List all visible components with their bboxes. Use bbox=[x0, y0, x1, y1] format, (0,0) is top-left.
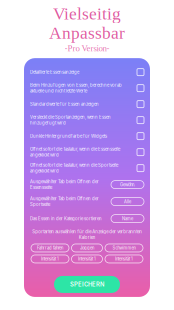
staticText: Sportarten auswählen für die Anzeige der… bbox=[32, 229, 142, 240]
button[interactable]: Fahrrad fahren bbox=[31, 244, 69, 252]
staticText: Gewöhn. bbox=[120, 182, 135, 187]
staticText: Ausgewählter Tab beim Öffnen der Sportse… bbox=[30, 196, 99, 207]
staticText: Alle bbox=[124, 199, 131, 204]
button[interactable]: Intensität 1 bbox=[31, 255, 69, 263]
staticText: Joggen bbox=[80, 245, 94, 250]
staticText: Fahrrad fahren bbox=[37, 245, 63, 250]
staticText: Standardwerte für Essen anzeigen bbox=[30, 102, 99, 107]
staticText: Öffnet sofort die Tastatur, wenn die Ess… bbox=[30, 147, 120, 157]
button[interactable]: Name bbox=[111, 215, 144, 223]
button[interactable]: Versteckt die Sportanzeigen, wenn Essen … bbox=[30, 112, 144, 128]
staticText: Versteckt die Sportanzeigen, wenn Essen … bbox=[30, 115, 111, 125]
staticText: Öffnet sofort die Tastatur, wenn die Spo… bbox=[30, 163, 118, 173]
staticText: Name bbox=[122, 216, 133, 221]
staticText: Vielseitig bbox=[53, 4, 121, 23]
button[interactable]: Schwimmen bbox=[105, 244, 143, 252]
button[interactable]: Intensität 1 bbox=[105, 255, 143, 263]
staticText: Anpassbar bbox=[49, 23, 125, 42]
button[interactable]: Joggen bbox=[71, 244, 102, 252]
staticText: SPEICHERN bbox=[70, 281, 104, 288]
staticText: Beim Hinzufügen von Essen, berechne vora… bbox=[30, 83, 122, 93]
staticText: Intensität 1 bbox=[115, 256, 133, 261]
staticText: Ausgewählter Tab beim Öffnen der Essenss… bbox=[30, 179, 99, 190]
button[interactable]: Intensität 1 bbox=[71, 255, 102, 263]
staticText: Detaillierte Essensanzeige bbox=[30, 70, 79, 75]
button[interactable]: Öffnet sofort die Tastatur, wenn die Ess… bbox=[30, 144, 144, 160]
button[interactable]: Öffnet sofort die Tastatur, wenn die Spo… bbox=[30, 160, 144, 176]
button[interactable]: Standardwerte für Essen anzeigen bbox=[30, 96, 144, 112]
staticText: Intensität 1 bbox=[78, 256, 96, 261]
button[interactable]: SPEICHERN bbox=[54, 276, 120, 293]
staticText: Schwimmen bbox=[112, 245, 135, 250]
button[interactable]: Detaillierte Essensanzeige bbox=[30, 64, 144, 80]
staticText: Das Essen in der Kategorie sortieren bbox=[30, 216, 102, 221]
button[interactable]: Gewöhn. bbox=[111, 181, 144, 189]
staticText: Intensität 1 bbox=[41, 256, 59, 261]
staticText: -Pro Version- bbox=[64, 43, 109, 53]
button[interactable]: Dunkle Hintergrundfarbe für Widgets bbox=[30, 128, 144, 144]
button[interactable]: Alle bbox=[111, 198, 144, 206]
button[interactable]: Beim Hinzufügen von Essen, berechne vora… bbox=[30, 80, 144, 96]
staticText: Dunkle Hintergrundfarbe für Widgets bbox=[30, 134, 107, 139]
